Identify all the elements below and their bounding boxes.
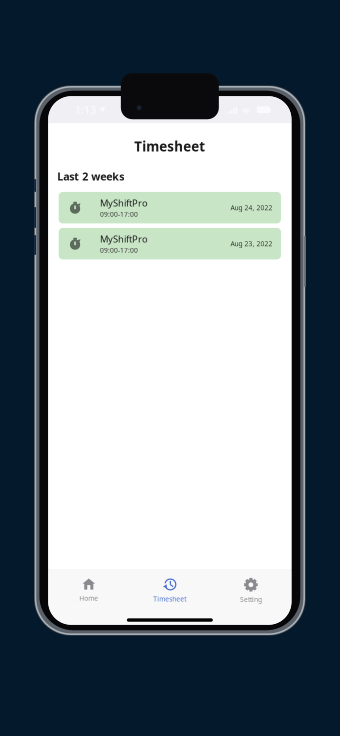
staticText: Aug 24, 2022: [230, 203, 272, 212]
button[interactable]: MyShiftPro: [59, 192, 281, 223]
button[interactable]: MyShiftPro: [59, 228, 281, 259]
staticText: 09:00-17:00: [100, 210, 138, 219]
staticText: MyShiftPro: [100, 233, 148, 245]
button[interactable]: Home: [48, 570, 129, 605]
staticText: Aug 23, 2022: [230, 239, 272, 248]
staticText: MyShiftPro: [100, 197, 148, 209]
staticText: Home: [79, 594, 98, 602]
staticText: Last 2 weeks: [57, 169, 124, 183]
staticText: 09:00-17:00: [100, 246, 138, 255]
staticText: Setting: [240, 595, 262, 604]
staticText: Timesheet: [134, 137, 205, 155]
button[interactable]: Setting: [210, 570, 291, 605]
staticText: Timesheet: [153, 594, 186, 603]
button[interactable]: Timesheet: [129, 570, 210, 605]
staticText: 1:13: [75, 103, 96, 117]
